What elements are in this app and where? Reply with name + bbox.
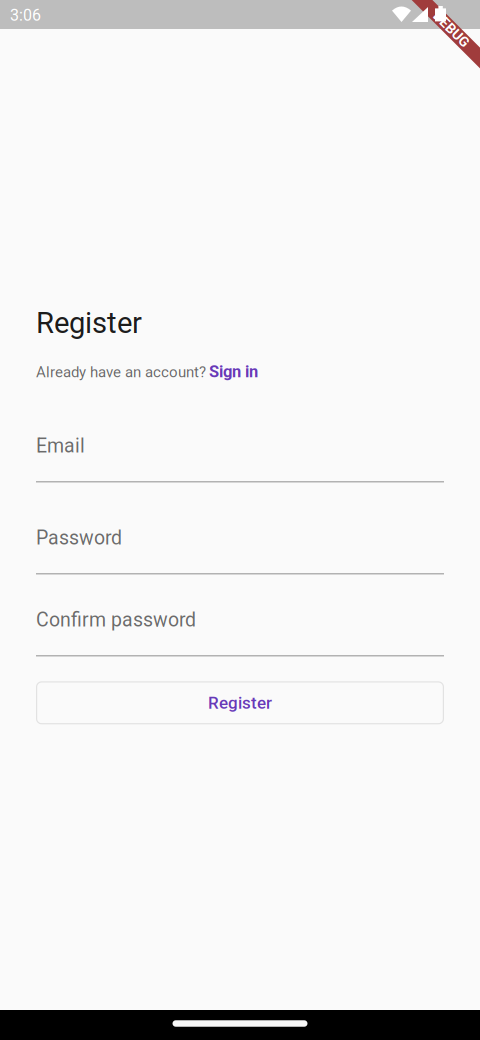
staticText: Register xyxy=(36,306,142,340)
staticText: Password xyxy=(36,526,122,549)
button[interactable]: Sign in xyxy=(209,362,258,381)
staticText: 3:06 xyxy=(10,6,41,25)
staticText: Email xyxy=(36,434,85,457)
staticText: Already have an account? xyxy=(36,363,206,381)
staticText: Register xyxy=(208,693,272,713)
staticText: Sign in xyxy=(209,362,258,381)
staticText: Confirm password xyxy=(36,608,196,631)
button[interactable]: Register xyxy=(36,681,444,724)
